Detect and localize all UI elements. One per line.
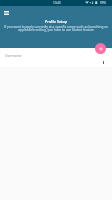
button[interactable]: Add [95, 43, 106, 54]
staticText: If you want to apply currently at a spec… [4, 25, 108, 32]
button[interactable]: Menu [1, 7, 12, 18]
staticText: 99% [100, 1, 106, 5]
button[interactable]: More options [103, 61, 111, 67]
staticText: Profile Setup [0, 19, 112, 24]
staticText: 10:45 [53, 1, 61, 5]
button[interactable]: Username [5, 53, 22, 58]
